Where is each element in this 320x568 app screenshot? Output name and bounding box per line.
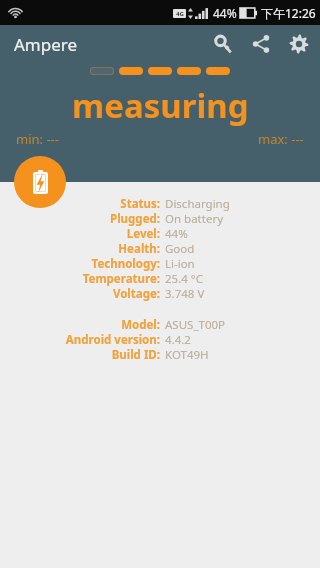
button[interactable]: Technology:	[0, 256, 320, 271]
button[interactable]: Settings	[280, 25, 318, 63]
staticText: KOT49H	[165, 347, 209, 362]
staticText: Ampere	[14, 33, 78, 56]
staticText: ASUS_T00P	[165, 317, 225, 332]
staticText: On battery	[165, 211, 224, 226]
staticText: 4G	[176, 10, 184, 18]
staticText: Level:	[126, 226, 160, 241]
button[interactable]: Voltage:	[0, 286, 320, 301]
button[interactable]: Model:	[0, 317, 320, 332]
staticText: Temperature:	[82, 271, 160, 286]
staticText: Health:	[118, 241, 160, 256]
staticText: Discharging	[165, 196, 230, 211]
staticText: 25.4 °C	[165, 271, 203, 286]
button[interactable]: Health:	[0, 241, 320, 256]
staticText: Status:	[120, 196, 160, 211]
staticText: 4.4.2	[165, 332, 191, 347]
staticText: Technology:	[91, 256, 160, 271]
button[interactable]: Build ID:	[0, 347, 320, 362]
staticText: max: ---	[258, 130, 304, 148]
button[interactable]: Unlock	[204, 25, 242, 63]
staticText: measuring	[72, 83, 249, 128]
staticText: Android version:	[65, 332, 160, 347]
staticText: min: ---	[16, 130, 59, 148]
staticText: 44%	[165, 226, 188, 241]
button[interactable]: Share	[242, 25, 280, 63]
staticText: 44%	[213, 5, 237, 21]
staticText: Voltage:	[112, 286, 160, 301]
button[interactable]: Plugged:	[0, 211, 320, 226]
staticText: 下午12:26	[261, 5, 316, 21]
staticText: Good	[165, 241, 195, 256]
staticText: Plugged:	[110, 211, 160, 226]
button[interactable]: Status:	[0, 196, 320, 211]
button[interactable]: Android version:	[0, 332, 320, 347]
staticText: Build ID:	[111, 347, 160, 362]
staticText: Model:	[121, 317, 160, 332]
button[interactable]: Battery charging info	[14, 156, 66, 208]
button[interactable]: Temperature:	[0, 271, 320, 286]
button[interactable]: Level:	[0, 226, 320, 241]
staticText: 3.748 V	[165, 286, 205, 301]
staticText: Li-ion	[165, 256, 195, 271]
